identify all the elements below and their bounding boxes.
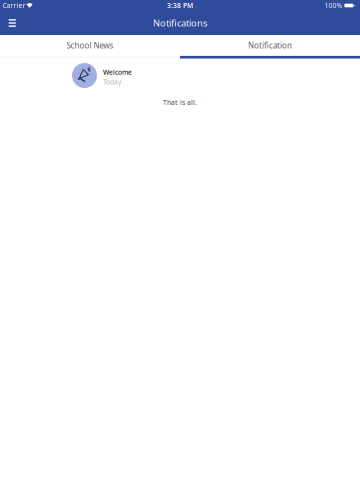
staticText: 100% bbox=[325, 1, 343, 10]
button[interactable]: Notification bbox=[180, 35, 360, 56]
staticText: That is all. bbox=[163, 98, 197, 107]
button[interactable]: School News bbox=[0, 35, 180, 56]
button[interactable]: Menu bbox=[0, 11, 24, 35]
staticText: Notifications bbox=[153, 17, 207, 29]
button[interactable]: Welcome bbox=[0, 63, 360, 88]
staticText: 3:38 PM bbox=[167, 1, 193, 10]
staticText: Welcome bbox=[103, 68, 132, 77]
staticText: Notification bbox=[248, 40, 292, 51]
staticText: School News bbox=[66, 40, 113, 51]
staticText: Carrier bbox=[3, 1, 26, 10]
staticText: Today bbox=[103, 77, 121, 86]
